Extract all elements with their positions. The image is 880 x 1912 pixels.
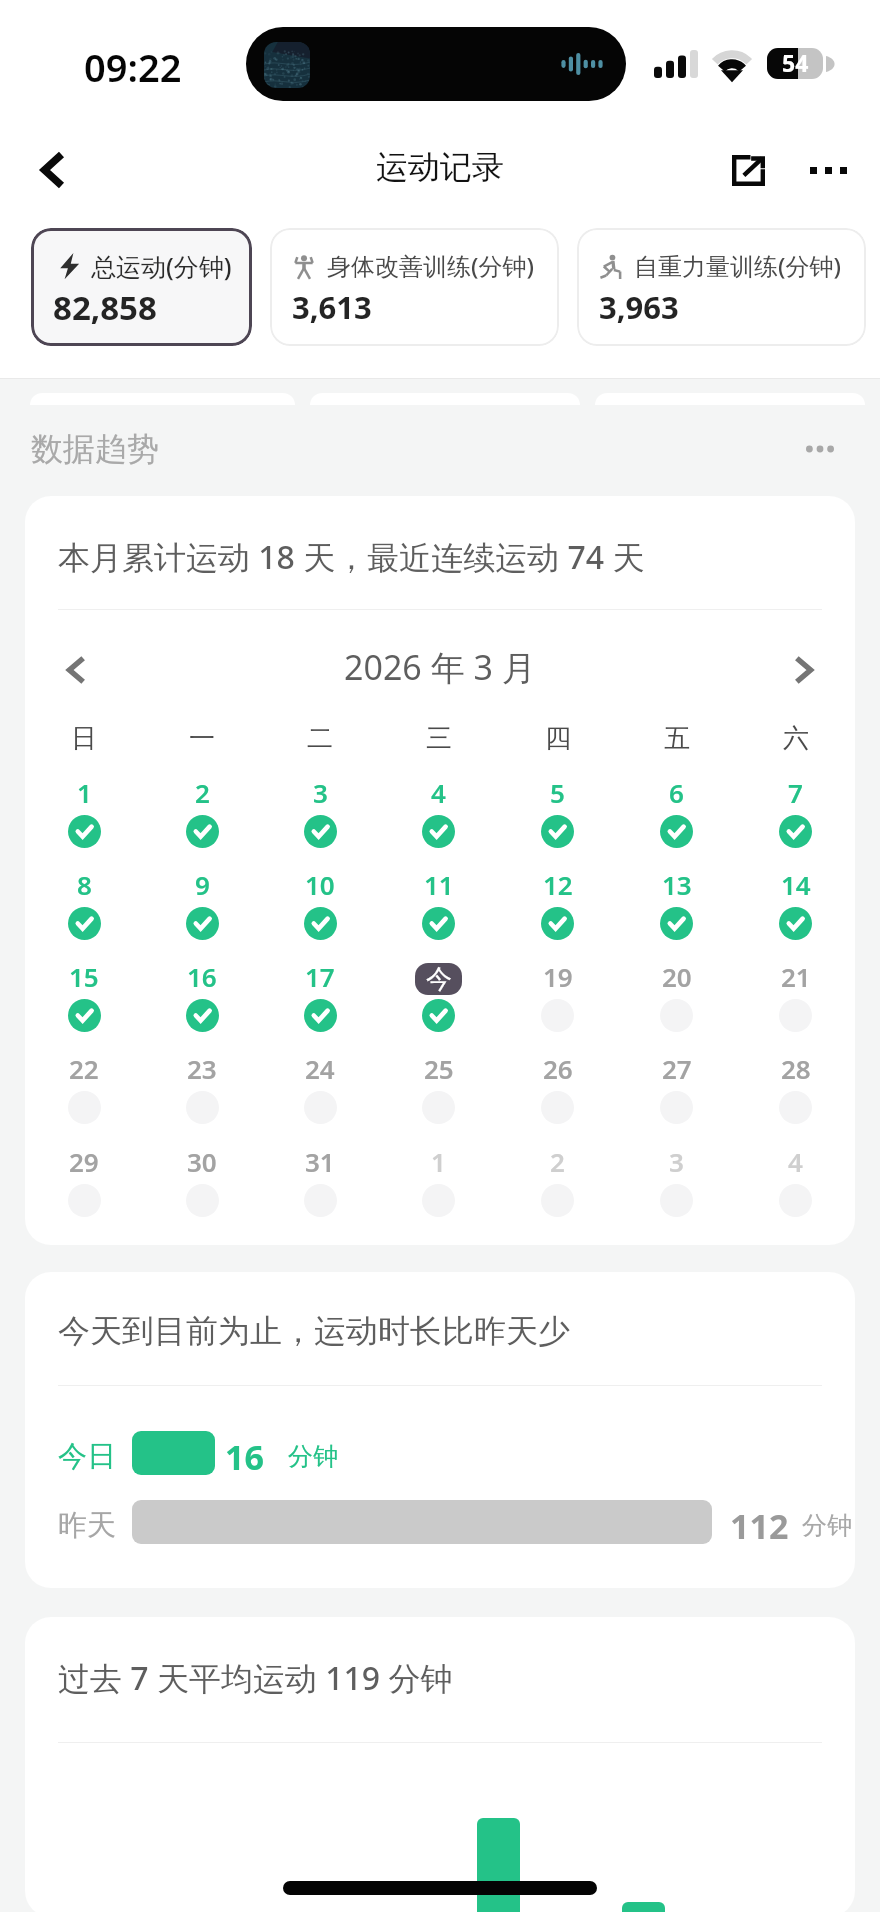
staticText: 8 <box>77 867 92 899</box>
staticText: 二 <box>307 722 333 755</box>
staticText: 今天到目前为止，运动时长比昨天少 <box>58 1311 570 1351</box>
staticText: 自重力量训练(分钟) <box>634 249 841 282</box>
staticText: 2 <box>195 775 210 807</box>
staticText: 23 <box>187 1051 217 1083</box>
staticText: 今日 <box>58 1438 116 1475</box>
staticText: 54 <box>782 48 809 78</box>
staticText: 26 <box>543 1051 573 1083</box>
staticText: 12 <box>543 867 573 899</box>
staticText: 昨天 <box>58 1507 116 1544</box>
staticText: 今 <box>426 963 452 995</box>
staticText: 1 <box>77 775 92 807</box>
staticText: 28 <box>781 1051 811 1083</box>
staticText: 三 <box>426 722 452 755</box>
staticText: 16 <box>187 959 217 991</box>
staticText: 2026 年 3 月 <box>344 644 536 690</box>
staticText: 10 <box>305 867 335 899</box>
staticText: 9 <box>195 867 210 899</box>
staticText: 5 <box>550 775 565 807</box>
staticText: 3 <box>669 1144 684 1176</box>
staticText: 身体改善训练(分钟) <box>327 249 534 282</box>
staticText: 6 <box>669 775 684 807</box>
staticText: 4 <box>431 775 446 807</box>
staticText: 29 <box>69 1144 99 1176</box>
staticText: 一 <box>189 722 215 755</box>
staticText: 25 <box>424 1051 454 1083</box>
staticText: 总运动(分钟) <box>91 249 232 283</box>
staticText: 31 <box>305 1144 335 1176</box>
button[interactable]: Share <box>716 138 780 202</box>
staticText: 3,613 <box>292 286 372 328</box>
button[interactable]: 自重力量训练(分钟) <box>577 228 866 346</box>
staticText: 3 <box>313 775 328 807</box>
staticText: 3,963 <box>599 286 679 328</box>
staticText: 数据趋势 <box>31 429 159 469</box>
staticText: 六 <box>783 722 809 755</box>
staticText: 运动记录 <box>376 147 504 187</box>
staticText: 82,858 <box>53 285 157 330</box>
staticText: 分钟 <box>288 1441 338 1472</box>
button[interactable]: Back <box>22 140 82 200</box>
staticText: 22 <box>69 1051 99 1083</box>
staticText: 四 <box>545 722 571 755</box>
staticText: 112 <box>730 1503 789 1549</box>
button[interactable]: More <box>782 422 858 476</box>
staticText: 1 <box>431 1144 446 1176</box>
staticText: 15 <box>69 959 99 991</box>
staticText: 17 <box>305 959 335 991</box>
staticText: 日 <box>71 722 97 755</box>
staticText: 21 <box>781 959 811 991</box>
staticText: 本月累计运动 18 天，最近连续运动 74 天 <box>58 535 645 579</box>
staticText: 分钟 <box>802 1510 852 1541</box>
staticText: 2 <box>550 1144 565 1176</box>
staticText: 7 <box>788 775 803 807</box>
staticText: 五 <box>664 722 690 755</box>
staticText: 过去 7 天平均运动 119 分钟 <box>58 1656 453 1700</box>
button[interactable]: 总运动(分钟) <box>31 228 252 346</box>
button[interactable]: 身体改善训练(分钟) <box>270 228 559 346</box>
staticText: 09:22 <box>84 41 182 93</box>
staticText: 30 <box>187 1144 217 1176</box>
staticText: 27 <box>662 1051 692 1083</box>
staticText: 4 <box>788 1144 803 1176</box>
staticText: 14 <box>781 867 811 899</box>
button[interactable]: Next month <box>771 638 835 702</box>
button[interactable]: Previous month <box>45 638 109 702</box>
staticText: 11 <box>424 867 454 899</box>
button[interactable]: More options <box>796 138 860 202</box>
staticText: 13 <box>662 867 692 899</box>
staticText: 16 <box>225 1434 264 1480</box>
staticText: 20 <box>662 959 692 991</box>
staticText: 19 <box>543 959 573 991</box>
staticText: 24 <box>305 1051 335 1083</box>
